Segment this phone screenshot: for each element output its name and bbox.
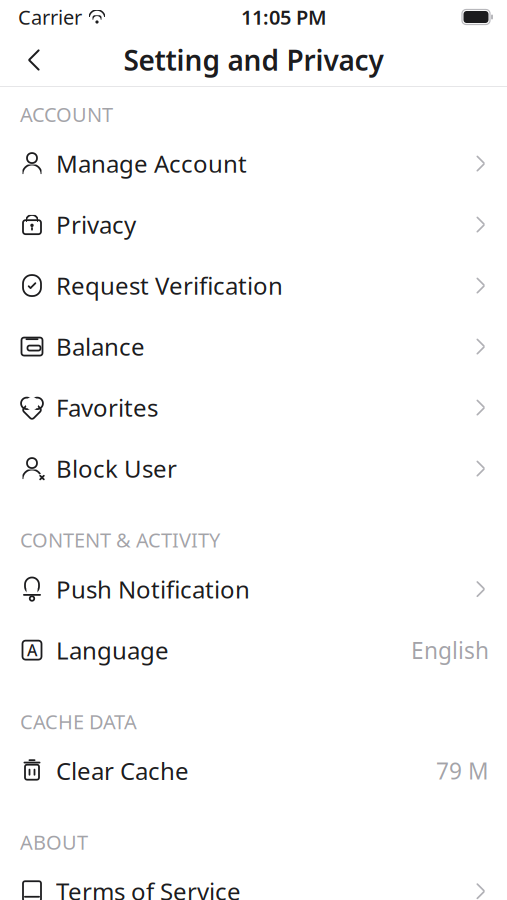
staticText: English <box>411 635 489 665</box>
staticText: A <box>27 639 37 661</box>
staticText: CACHE DATA <box>20 708 137 735</box>
button[interactable]: Manage Account <box>0 140 507 188</box>
staticText: 79 M <box>436 756 489 786</box>
button[interactable]: Block User <box>0 445 507 493</box>
staticText: Manage Account <box>56 148 247 179</box>
button[interactable]: Push Notification <box>0 565 507 613</box>
staticText: Push Notification <box>56 573 250 605</box>
staticText: Terms of Service <box>56 875 241 900</box>
staticText: Block User <box>56 453 177 484</box>
staticText: Privacy <box>56 209 136 240</box>
staticText: 11:05 PM <box>241 4 327 30</box>
button[interactable]: A <box>0 626 507 674</box>
staticText: ABOUT <box>20 829 88 855</box>
staticText: Language <box>56 634 169 666</box>
staticText: Request Verification <box>56 270 283 301</box>
button[interactable]: Terms of Service <box>0 867 507 900</box>
button[interactable]: Favorites <box>0 384 507 432</box>
staticText: Setting and Privacy <box>123 41 383 79</box>
button[interactable]: Balance <box>0 323 507 371</box>
staticText: CONTENT & ACTIVITY <box>20 527 220 553</box>
button[interactable]: Clear Cache <box>0 747 507 795</box>
staticText: Favorites <box>56 392 158 423</box>
button[interactable]: Back <box>12 38 56 82</box>
staticText: Carrier <box>18 4 82 30</box>
staticText: Balance <box>56 331 145 362</box>
staticText: Clear Cache <box>56 755 189 787</box>
button[interactable]: Request Verification <box>0 262 507 310</box>
button[interactable]: Privacy <box>0 201 507 249</box>
staticText: ACCOUNT <box>20 101 113 128</box>
